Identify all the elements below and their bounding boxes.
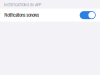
staticText: Notifications sonores bbox=[4, 12, 39, 18]
staticText: NOTIFICATIONS IN-APP bbox=[4, 2, 41, 7]
button[interactable]: Notifications sonores bbox=[0, 9, 100, 22]
